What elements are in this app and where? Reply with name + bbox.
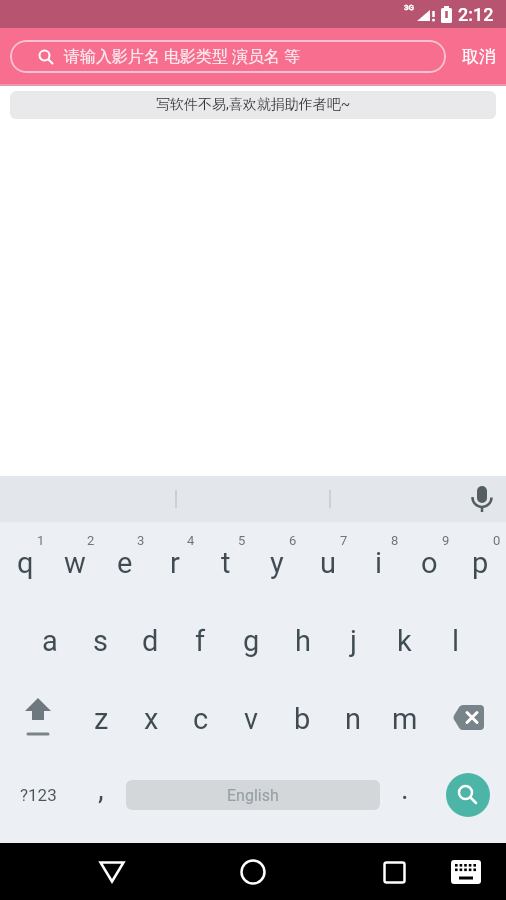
button[interactable]: b <box>277 678 328 756</box>
staticText: 5 <box>238 533 246 548</box>
staticText: 请输入影片名 电影类型 演员名 等 <box>64 47 300 67</box>
staticText: z <box>94 702 109 736</box>
staticText: g <box>243 624 260 658</box>
button[interactable] <box>374 852 414 892</box>
staticText: 0 <box>493 533 501 548</box>
staticText: f <box>195 624 206 658</box>
staticText: e <box>117 546 133 580</box>
staticText: 7 <box>340 533 348 548</box>
button[interactable]: l <box>430 600 481 678</box>
staticText: 3 <box>137 533 145 548</box>
button[interactable]: z <box>76 678 126 756</box>
button[interactable]: e <box>100 522 150 600</box>
button[interactable]: f <box>175 600 226 678</box>
button[interactable]: h <box>277 600 328 678</box>
staticText: 2:12 <box>458 4 494 25</box>
staticText: c <box>193 702 209 736</box>
button[interactable]: m <box>379 678 430 756</box>
staticText: r <box>170 546 180 580</box>
button[interactable] <box>92 852 132 892</box>
staticText: w <box>64 546 86 580</box>
button[interactable]: ?123 <box>0 756 76 834</box>
button[interactable]: v <box>226 678 277 756</box>
staticText: x <box>144 702 159 736</box>
staticText: 2 <box>87 533 95 548</box>
button[interactable] <box>469 486 495 513</box>
button[interactable]: 写软件不易,喜欢就捐助作者吧~ <box>10 91 496 119</box>
button[interactable]: English <box>126 780 380 810</box>
button[interactable]: s <box>75 600 125 678</box>
button[interactable]: p <box>455 522 506 600</box>
button[interactable]: r <box>150 522 200 600</box>
staticText: m <box>392 702 418 736</box>
staticText: k <box>397 624 412 658</box>
button[interactable]: w <box>50 522 100 600</box>
staticText: j <box>350 624 357 658</box>
staticText: h <box>295 624 311 658</box>
staticText: u <box>320 546 336 580</box>
button[interactable] <box>233 852 273 892</box>
staticText: 9 <box>442 533 450 548</box>
button[interactable]: g <box>226 600 277 678</box>
button[interactable]: k <box>379 600 430 678</box>
button[interactable]: a <box>25 600 75 678</box>
staticText: 取消 <box>462 46 496 67</box>
staticText: t <box>221 546 231 580</box>
button[interactable]: n <box>328 678 379 756</box>
staticText: 4 <box>187 533 195 548</box>
staticText: o <box>421 546 438 580</box>
button[interactable] <box>446 773 490 817</box>
button[interactable]: i <box>353 522 404 600</box>
button[interactable]: d <box>125 600 175 678</box>
button[interactable]: t <box>200 522 251 600</box>
staticText: 6 <box>289 533 297 548</box>
staticText: 3G <box>404 3 414 12</box>
staticText: s <box>93 624 108 658</box>
button[interactable]: q <box>0 522 50 600</box>
staticText: b <box>294 702 311 736</box>
staticText: . <box>401 772 409 806</box>
button[interactable] <box>448 854 484 890</box>
staticText: y <box>270 546 284 580</box>
staticText: n <box>345 702 362 736</box>
button[interactable] <box>0 678 76 756</box>
button[interactable]: u <box>302 522 353 600</box>
staticText: 1 <box>37 533 45 548</box>
button[interactable]: 取消 <box>462 46 496 67</box>
button[interactable]: j <box>328 600 379 678</box>
button[interactable]: c <box>176 678 226 756</box>
staticText: d <box>142 624 159 658</box>
button[interactable]: y <box>251 522 302 600</box>
staticText: a <box>42 624 58 658</box>
button[interactable]: . <box>380 756 430 834</box>
staticText: v <box>244 702 259 736</box>
button[interactable]: x <box>126 678 176 756</box>
staticText: i <box>375 546 383 580</box>
staticText: p <box>472 546 489 580</box>
button[interactable]: 请输入影片名 电影类型 演员名 等 <box>10 40 446 73</box>
button[interactable]: , <box>76 756 126 834</box>
staticText: English <box>227 786 279 805</box>
button[interactable]: o <box>404 522 455 600</box>
button[interactable] <box>430 678 506 756</box>
staticText: , <box>98 772 104 806</box>
staticText: q <box>17 546 34 580</box>
staticText: 写软件不易,喜欢就捐助作者吧~ <box>156 96 351 114</box>
staticText: 8 <box>391 533 399 548</box>
staticText: l <box>452 624 460 658</box>
staticText: ?123 <box>20 785 57 805</box>
